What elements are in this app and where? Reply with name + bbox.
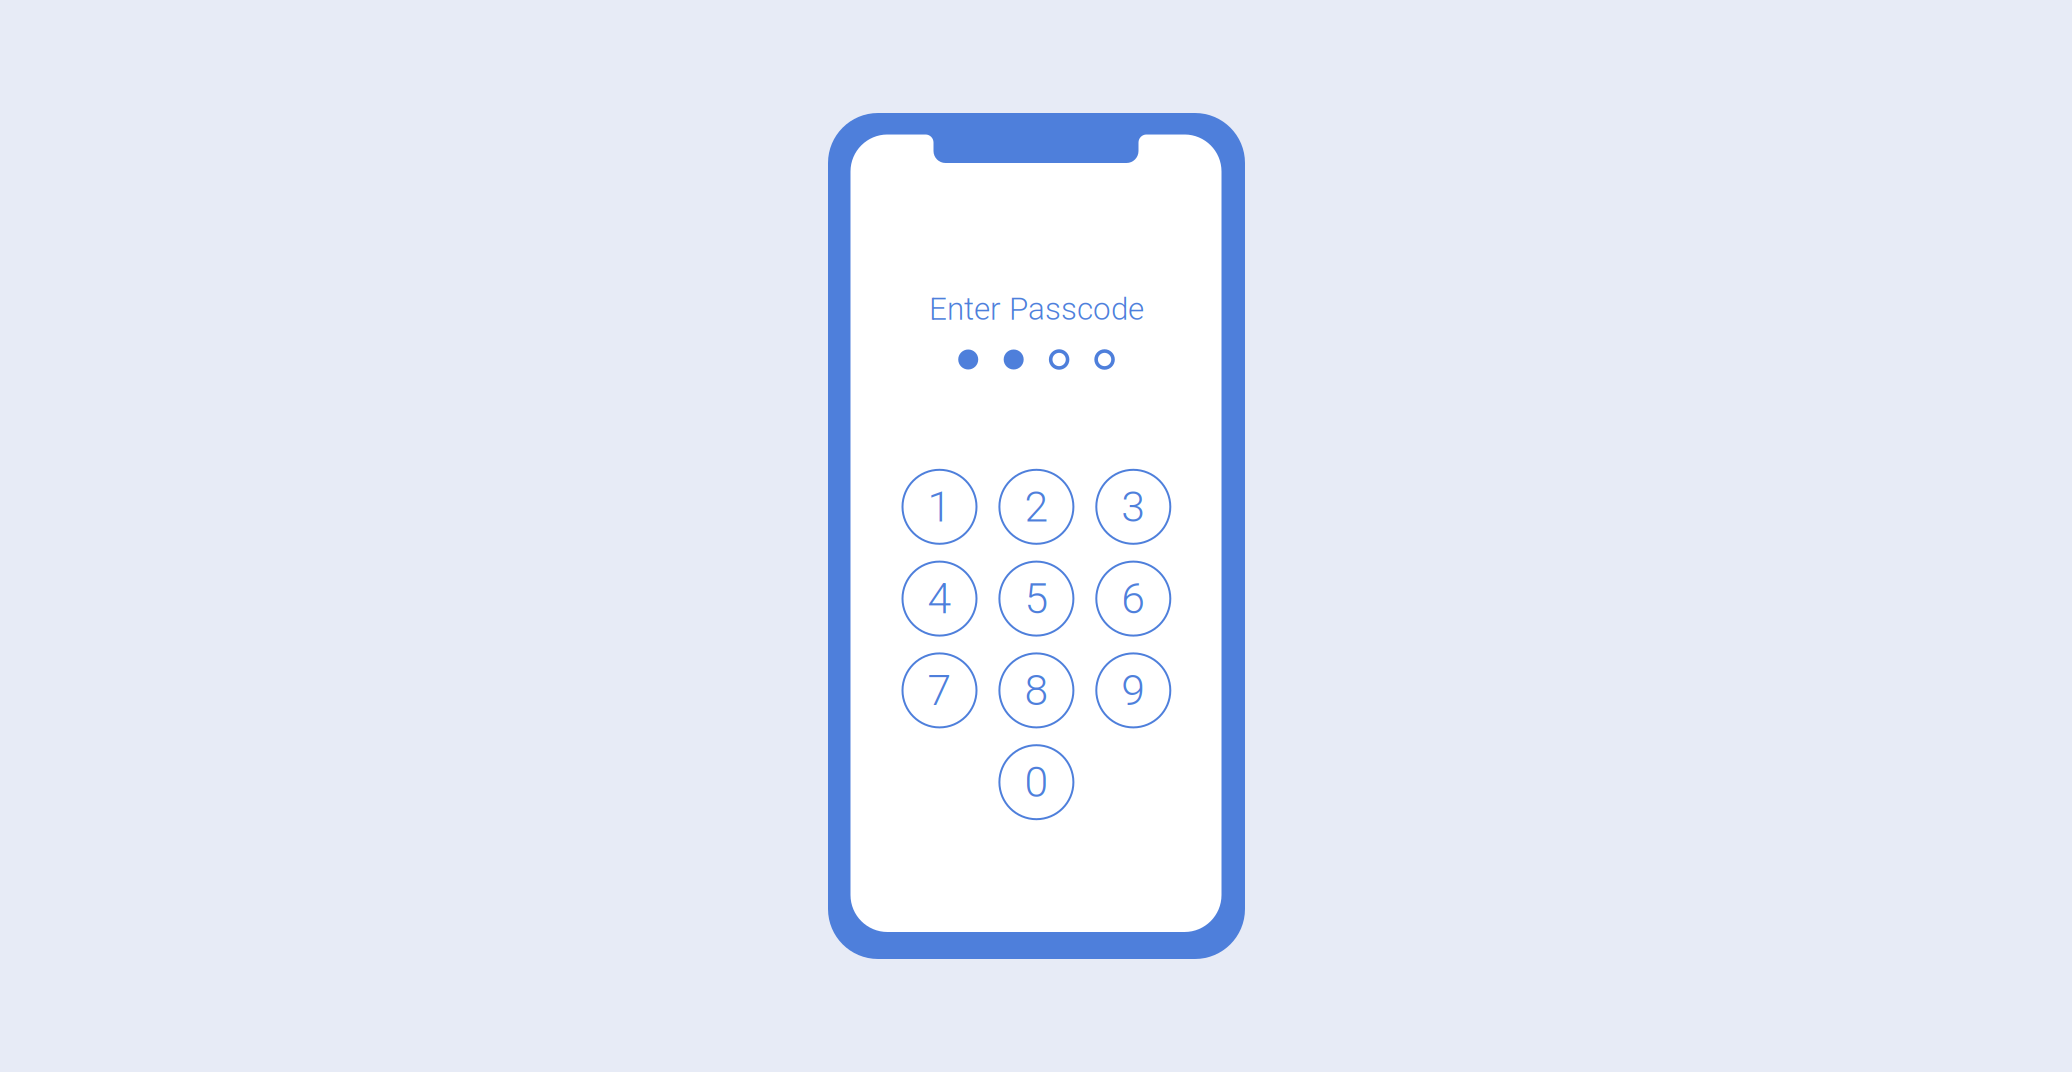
staticText: Enter Passcode: [929, 291, 1144, 327]
button[interactable]: 8: [999, 653, 1073, 727]
staticText: 4: [927, 574, 951, 624]
staticText: 8: [1024, 665, 1048, 715]
button[interactable]: 0: [999, 745, 1073, 819]
button[interactable]: 5: [999, 562, 1073, 636]
button[interactable]: 4: [902, 562, 976, 636]
staticText: 2: [1024, 482, 1048, 532]
button[interactable]: 7: [902, 653, 976, 727]
button[interactable]: 2: [999, 470, 1073, 544]
button[interactable]: 1: [902, 470, 976, 544]
staticText: 6: [1121, 574, 1145, 624]
button[interactable]: 9: [1096, 653, 1170, 727]
staticText: 7: [927, 665, 951, 715]
button[interactable]: 3: [1096, 470, 1170, 544]
staticText: 9: [1121, 665, 1145, 715]
staticText: 0: [1024, 757, 1048, 807]
staticText: 1: [927, 482, 951, 532]
button[interactable]: 6: [1096, 562, 1170, 636]
staticText: 5: [1024, 574, 1048, 624]
staticText: 3: [1121, 482, 1145, 532]
